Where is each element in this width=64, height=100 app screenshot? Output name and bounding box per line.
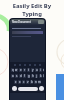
button[interactable]: w bbox=[15, 68, 18, 72]
button[interactable]: j bbox=[35, 74, 38, 78]
button[interactable]: z bbox=[14, 80, 17, 84]
staticText: Easily Edit By Typing bbox=[0, 2, 64, 18]
button[interactable]: t bbox=[27, 68, 30, 72]
staticText: t bbox=[28, 68, 30, 72]
staticText: New Document bbox=[12, 20, 31, 24]
staticText: w bbox=[15, 68, 18, 72]
staticText: h bbox=[32, 74, 34, 78]
button[interactable]: e bbox=[19, 68, 22, 72]
staticText: d bbox=[20, 74, 22, 78]
staticText: y bbox=[32, 68, 34, 72]
staticText: f bbox=[24, 74, 25, 78]
button[interactable]: c bbox=[22, 80, 25, 84]
staticText: o bbox=[43, 68, 44, 72]
staticText: v bbox=[27, 80, 29, 84]
button[interactable]: y bbox=[31, 68, 34, 72]
staticText: s bbox=[16, 74, 18, 78]
button[interactable]: h bbox=[31, 74, 34, 78]
staticText: q bbox=[12, 68, 14, 72]
staticText: n bbox=[35, 80, 37, 84]
staticText: b bbox=[31, 80, 33, 84]
staticText: a bbox=[12, 74, 14, 78]
button[interactable]: q bbox=[11, 68, 14, 72]
staticText: l bbox=[43, 74, 44, 78]
button[interactable]: s bbox=[15, 74, 18, 78]
button[interactable]: r bbox=[23, 68, 26, 72]
staticText: u bbox=[36, 68, 38, 72]
staticText: j bbox=[36, 74, 37, 78]
button[interactable]: v bbox=[26, 80, 29, 84]
button[interactable]: l bbox=[43, 74, 44, 78]
button[interactable]: New Document bbox=[10, 19, 45, 25]
button[interactable]: Save bbox=[38, 20, 44, 24]
button[interactable]: g bbox=[27, 74, 30, 78]
staticText: z bbox=[15, 80, 17, 84]
staticText: g bbox=[28, 74, 30, 78]
button[interactable]: d bbox=[19, 74, 22, 78]
staticText: i bbox=[40, 68, 41, 72]
staticText: m bbox=[38, 80, 41, 84]
button[interactable]: n bbox=[34, 80, 37, 84]
staticText: x bbox=[19, 80, 21, 84]
button[interactable]: m bbox=[38, 80, 41, 84]
button[interactable]: u bbox=[35, 68, 38, 72]
button[interactable]: Enter bbox=[39, 86, 44, 91]
button[interactable]: o bbox=[43, 68, 44, 72]
button[interactable]: i bbox=[39, 68, 42, 72]
button[interactable]: k bbox=[39, 74, 42, 78]
staticText: k bbox=[40, 74, 42, 78]
button[interactable]: x bbox=[18, 80, 21, 84]
button[interactable]: Space bbox=[18, 87, 38, 91]
staticText: e bbox=[20, 68, 22, 72]
button[interactable]: Emoji bbox=[12, 86, 17, 91]
staticText: c bbox=[23, 80, 25, 84]
button[interactable]: b bbox=[30, 80, 33, 84]
button[interactable]: a bbox=[11, 74, 14, 78]
button[interactable]: f bbox=[23, 74, 26, 78]
staticText: r bbox=[24, 68, 26, 72]
